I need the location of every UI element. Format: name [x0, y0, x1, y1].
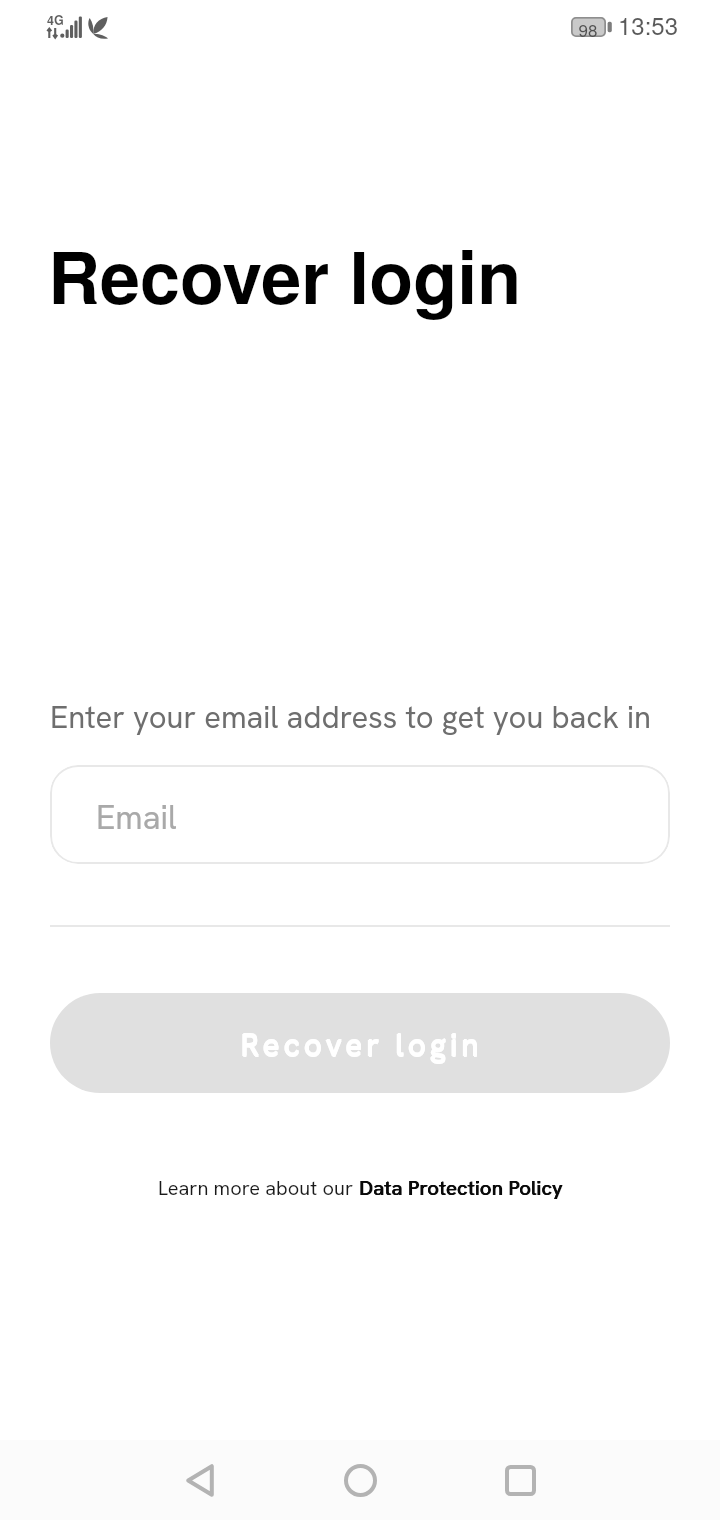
staticText: 13:53	[618, 7, 679, 41]
staticText: Data Protection Policy	[359, 1175, 563, 1201]
button[interactable]: Email	[50, 765, 670, 864]
staticText: Recover login	[48, 223, 522, 326]
staticText: Recover login	[240, 1025, 482, 1065]
button[interactable]: Learn more about our	[50, 1175, 670, 1201]
button[interactable]: Home	[320, 1440, 400, 1520]
staticText: Learn more about our	[158, 1175, 359, 1201]
button[interactable]: Back	[160, 1440, 240, 1520]
staticText: Data Protection Policy	[360, 1175, 564, 1201]
button[interactable]: Recents	[480, 1440, 560, 1520]
staticText: Data Protection Policy	[359, 1175, 563, 1201]
staticText: Recover login	[241, 1026, 483, 1066]
staticText: Enter your email address to get you back…	[50, 697, 651, 737]
staticText: 4G	[47, 11, 64, 29]
staticText: 98	[567, 17, 609, 37]
button[interactable]: Recover login	[50, 993, 670, 1093]
staticText: Data Protection Policy	[359, 1175, 563, 1201]
staticText: Recover login	[241, 1024, 483, 1064]
staticText: Email	[96, 796, 177, 839]
staticText: Recover login	[241, 1025, 483, 1065]
